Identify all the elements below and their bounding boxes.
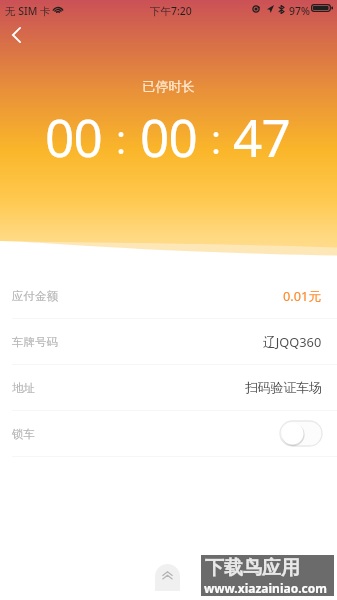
staticText: 47: [233, 102, 291, 166]
button[interactable]: Expand panel: [155, 564, 180, 591]
button[interactable]: 锁车: [12, 411, 322, 456]
staticText: 0.01元: [283, 287, 322, 304]
staticText: 下载鸟应用: [205, 556, 300, 580]
staticText: 00: [45, 102, 103, 166]
staticText: 无 SIM 卡: [5, 4, 51, 18]
staticText: 下午7:20: [150, 4, 192, 18]
staticText: 辽JQQ360: [263, 333, 322, 350]
staticText: 应付金额: [12, 289, 58, 303]
staticText: 已停时长: [0, 78, 337, 94]
button[interactable]: Back: [0, 20, 44, 49]
button[interactable]: 车牌号码: [12, 319, 322, 364]
button[interactable]: 地址: [12, 365, 322, 410]
button[interactable]: 应付金额: [12, 273, 322, 318]
staticText: 地址: [12, 381, 35, 395]
staticText: 97%: [289, 4, 310, 18]
staticText: 扫码验证车场: [245, 380, 322, 396]
button[interactable]: Lock car: [280, 421, 322, 446]
staticText: www.xiazainiao.com: [204, 580, 327, 596]
staticText: 车牌号码: [12, 335, 58, 349]
staticText: 锁车: [12, 427, 35, 441]
staticText: 00: [140, 102, 198, 166]
